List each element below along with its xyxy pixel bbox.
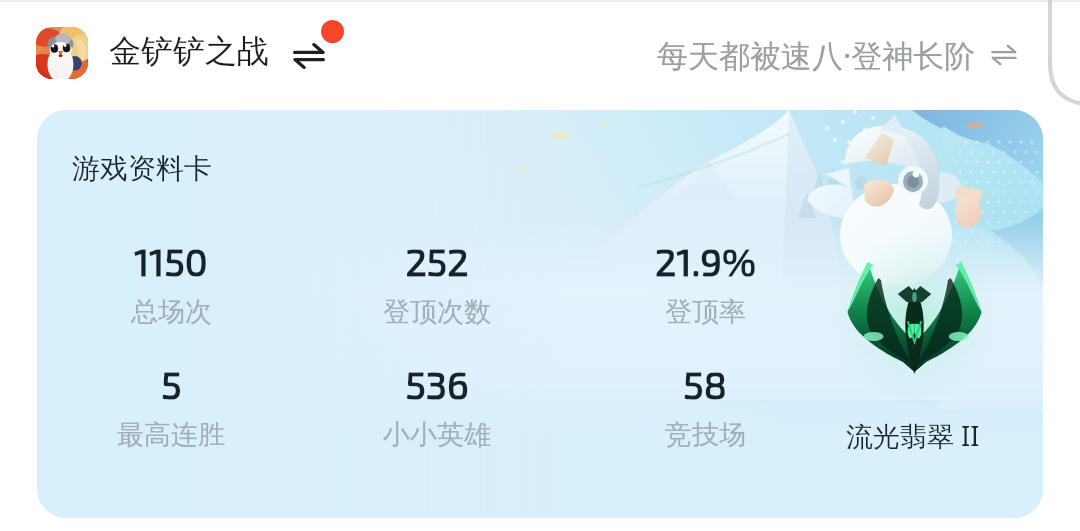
- staticText: 登顶率: [665, 295, 746, 329]
- staticText: 登顶次数: [383, 295, 491, 329]
- staticText: 5: [161, 361, 182, 407]
- staticText: 最高连胜: [117, 418, 225, 452]
- staticText: 游戏资料卡: [72, 151, 212, 186]
- button[interactable]: 58: [585, 361, 825, 452]
- staticText: 21.9%: [655, 238, 756, 284]
- staticText: 536: [405, 361, 469, 407]
- button[interactable]: 每天都被速八·登神长阶: [657, 30, 1018, 80]
- staticText: 252: [405, 238, 469, 284]
- button[interactable]: 536: [317, 361, 557, 452]
- button[interactable]: 5: [51, 361, 291, 452]
- staticText: 58: [683, 361, 727, 407]
- staticText: 竞技场: [665, 418, 746, 452]
- staticText: 总场次: [131, 295, 212, 329]
- staticText: 金铲铲之战: [109, 31, 269, 71]
- button[interactable]: 1150: [51, 238, 291, 329]
- staticText: 流光翡翠 II: [846, 417, 980, 454]
- button[interactable]: 金铲铲之战: [109, 31, 269, 71]
- button[interactable]: Switch game: [288, 35, 330, 77]
- button[interactable]: 金铲铲之战 game icon: [36, 27, 88, 79]
- staticText: 每天都被速八·登神长阶: [657, 34, 976, 76]
- staticText: 小小英雄: [383, 418, 491, 452]
- button[interactable]: 252: [317, 238, 557, 329]
- button[interactable]: 游戏资料卡: [37, 110, 1043, 518]
- button[interactable]: 流光翡翠 II: [835, 409, 991, 461]
- staticText: 1150: [134, 238, 208, 284]
- button[interactable]: 21.9%: [585, 238, 825, 329]
